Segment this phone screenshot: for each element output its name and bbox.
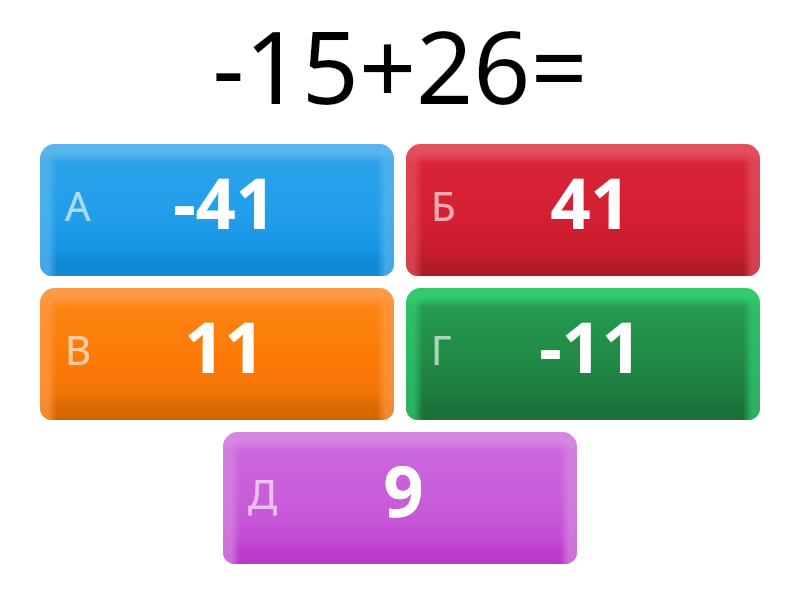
button[interactable]: 41 [406,144,760,276]
staticText: В [65,322,91,376]
staticText: -11 [539,298,642,393]
staticText: Д [248,466,278,520]
button[interactable]: -41 [40,144,394,276]
button[interactable]: -11 [406,288,760,420]
staticText: Г [431,322,452,376]
staticText: 41 [550,154,631,249]
staticText: -15+26= [212,0,588,133]
staticText: Б [431,178,456,232]
staticText: 9 [383,442,424,537]
button[interactable]: 11 [40,288,394,420]
staticText: -41 [173,154,276,249]
staticText: 11 [184,298,265,393]
button[interactable]: 9 [223,432,577,564]
staticText: А [65,178,91,232]
